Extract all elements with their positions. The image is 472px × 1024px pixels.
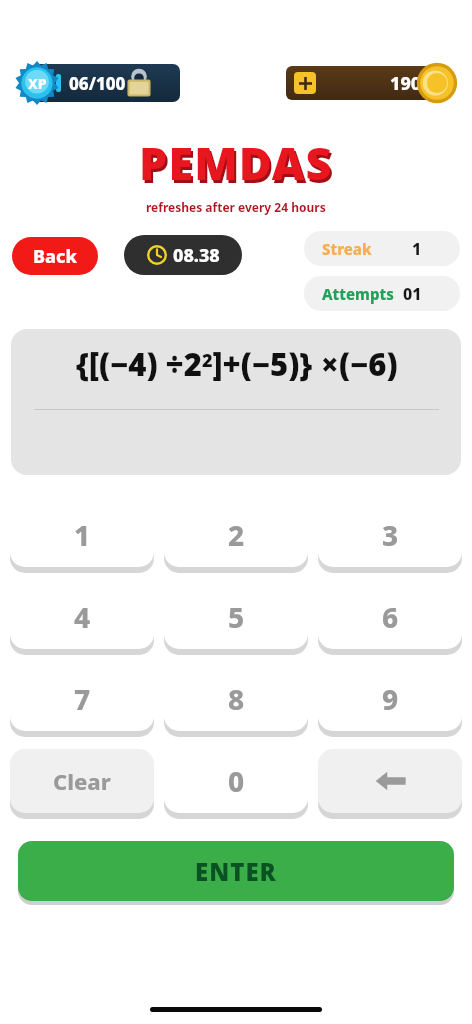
button[interactable]: 8 <box>164 667 308 731</box>
button[interactable]: {[(−4) ÷22]+(−5)} ×(−6) <box>11 329 461 475</box>
staticText: Back <box>33 244 77 269</box>
button[interactable]: 6 <box>318 585 462 649</box>
staticText: 4 <box>74 598 91 636</box>
staticText: Streak <box>322 239 372 259</box>
staticText: 8 <box>228 680 245 718</box>
button[interactable]: 06/100 <box>14 58 180 108</box>
staticText: 08.38 <box>173 243 220 268</box>
button[interactable]: 3 <box>318 503 462 567</box>
staticText: Attempts <box>322 284 394 304</box>
button[interactable]: 9 <box>318 667 462 731</box>
staticText: PEMDAS <box>139 132 333 193</box>
button[interactable]: 190 <box>286 58 458 108</box>
staticText: 190 <box>390 71 422 96</box>
staticText: 06/100 <box>69 72 126 95</box>
button[interactable]: 0 <box>164 749 308 813</box>
button[interactable]: 4 <box>10 585 154 649</box>
staticText: 1 <box>412 238 422 260</box>
staticText: ENTER <box>195 855 277 888</box>
button[interactable]: ENTER <box>18 841 454 901</box>
button[interactable]: 08.38 <box>124 235 242 275</box>
button[interactable]: Backspace <box>318 749 462 813</box>
staticText: PEMDAS <box>141 135 335 196</box>
staticText: 0 <box>228 762 245 800</box>
staticText: 01 <box>403 283 422 305</box>
staticText: 9 <box>382 680 399 718</box>
button[interactable]: Back <box>12 237 98 275</box>
staticText: 5 <box>228 598 245 636</box>
button[interactable]: Streak <box>304 231 460 266</box>
staticText: 1 <box>74 516 91 554</box>
staticText: 6 <box>382 598 399 636</box>
button[interactable]: 5 <box>164 585 308 649</box>
button[interactable]: Attempts <box>304 276 460 311</box>
button[interactable]: 2 <box>164 503 308 567</box>
staticText: XP <box>28 74 47 93</box>
staticText: 2 <box>228 516 245 554</box>
staticText: refreshes after every 24 hours <box>146 199 326 215</box>
staticText: Clear <box>53 766 111 796</box>
button[interactable]: Clear <box>10 749 154 813</box>
button[interactable]: 7 <box>10 667 154 731</box>
staticText: 7 <box>74 680 91 718</box>
button[interactable]: 1 <box>10 503 154 567</box>
staticText: 3 <box>382 516 399 554</box>
staticText: {[(−4) ÷22]+(−5)} ×(−6) <box>75 343 398 385</box>
